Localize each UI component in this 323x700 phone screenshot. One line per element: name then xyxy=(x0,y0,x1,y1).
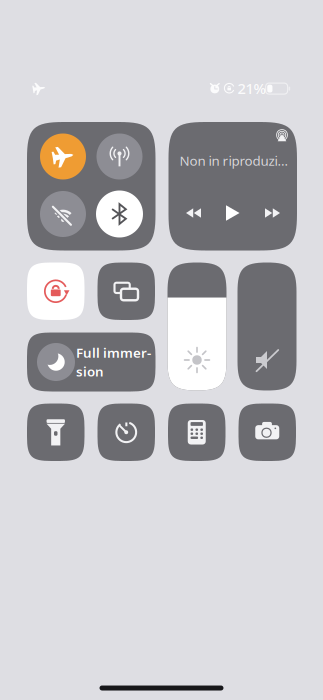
staticText: Non in riproduzi… xyxy=(179,152,288,169)
button[interactable]: Calculator xyxy=(168,403,225,461)
button[interactable]: Screen Mirroring xyxy=(97,262,155,320)
button[interactable]: Timer xyxy=(97,403,155,461)
button[interactable]: Rewind xyxy=(180,200,206,226)
button[interactable]: Camera xyxy=(238,403,296,461)
button[interactable]: Fast Forward xyxy=(259,200,285,226)
button[interactable]: AirPlay xyxy=(272,125,292,145)
button[interactable]: Bluetooth xyxy=(96,190,143,237)
button[interactable]: Brightness xyxy=(167,262,226,390)
button[interactable]: Wi-Fi xyxy=(40,191,86,237)
staticText: 21% xyxy=(237,79,265,98)
button[interactable]: Full immersion Focus xyxy=(27,332,155,391)
staticText: Full immer- xyxy=(76,344,151,361)
button[interactable]: Airplane Mode xyxy=(40,133,86,179)
button[interactable]: Cellular Data xyxy=(96,133,142,179)
staticText: sion xyxy=(76,362,104,380)
button[interactable]: Flashlight xyxy=(27,403,84,461)
button[interactable]: Volume xyxy=(237,262,296,390)
button[interactable]: Rotation Lock xyxy=(27,262,84,320)
button[interactable]: Play xyxy=(220,200,246,226)
